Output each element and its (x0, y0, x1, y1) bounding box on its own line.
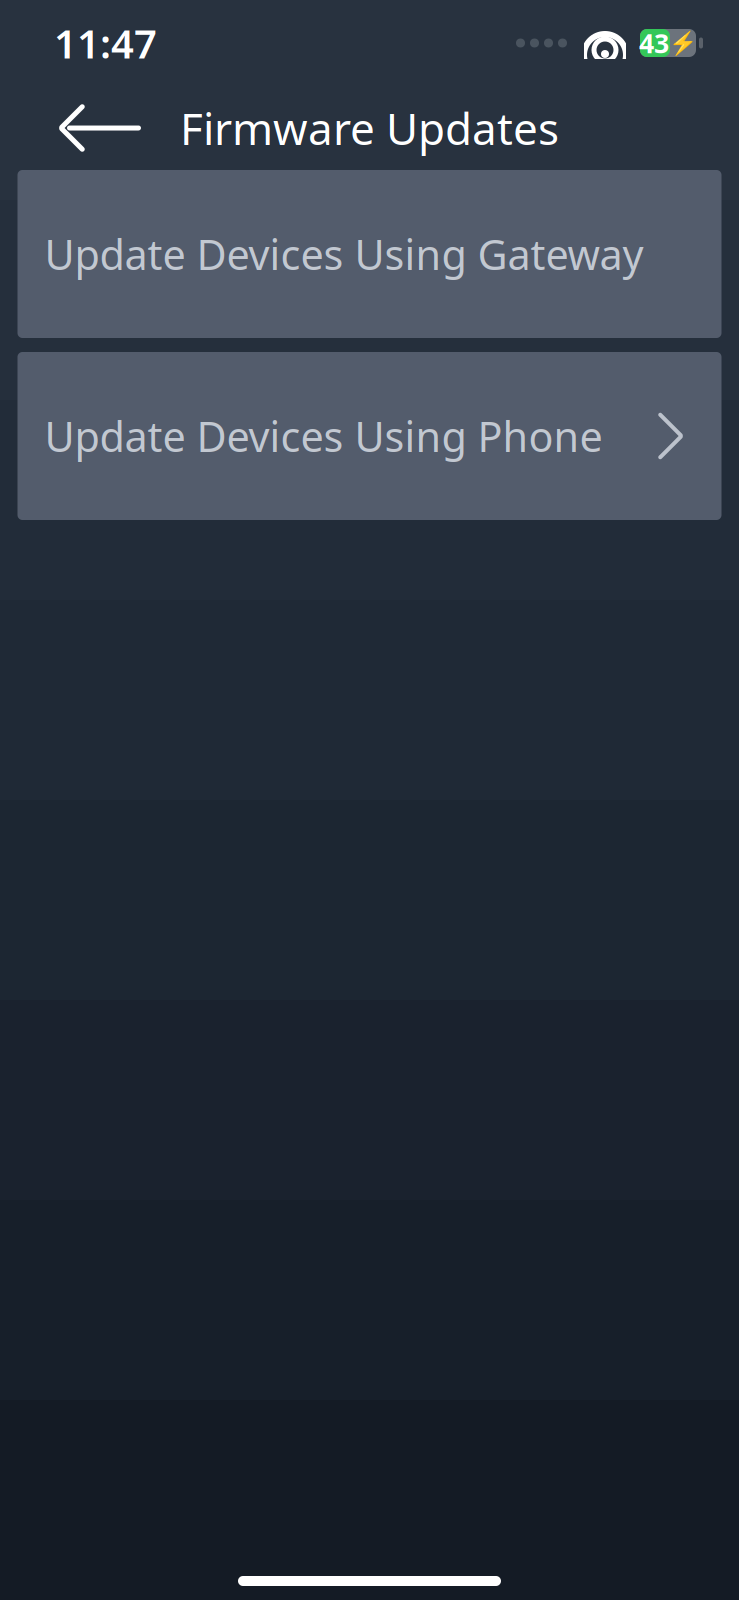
staticText: 11:47 (54, 16, 157, 69)
staticText: Firmware Updates (180, 99, 559, 157)
button[interactable]: Update Devices Using Gateway (17, 170, 721, 338)
staticText: Update Devices Using Gateway (44, 227, 643, 281)
staticText: Update Devices Using Phone (44, 409, 602, 463)
staticText: 43 (639, 25, 669, 61)
button[interactable]: Back (52, 93, 148, 163)
button[interactable]: Update Devices Using Phone (17, 352, 721, 520)
staticText: ⚡ (669, 30, 697, 56)
